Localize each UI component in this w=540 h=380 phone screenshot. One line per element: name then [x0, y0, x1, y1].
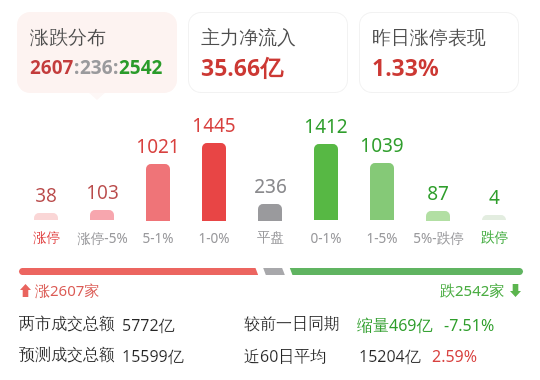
staticText: 1.33% [372, 51, 439, 82]
staticText: 236 [80, 54, 113, 80]
staticText: 2542 [119, 54, 163, 80]
other: 下跌 [510, 284, 521, 297]
staticText: 1445 [192, 112, 236, 137]
button[interactable]: 跌2542家 [430, 280, 521, 300]
staticText: 缩量469亿 [357, 314, 433, 336]
staticText: 1021 [136, 133, 180, 158]
staticText: 2.59% [432, 345, 478, 367]
staticText: 5%-跌停 [413, 229, 464, 247]
staticText: 1412 [304, 113, 348, 138]
staticText: 两市成交总额 [19, 314, 115, 334]
button[interactable]: 昨日涨停表现 [359, 12, 519, 93]
staticText: 5772亿 [122, 314, 175, 336]
staticText: 跌停 [481, 229, 508, 246]
staticText: 涨停 [33, 229, 60, 246]
staticText: 103 [86, 179, 119, 204]
staticText: 预测成交总额 [19, 345, 115, 365]
staticText: 0-1% [310, 229, 342, 247]
staticText: : [113, 54, 119, 80]
staticText: 2607 [30, 54, 74, 80]
button[interactable]: 上涨 [20, 280, 100, 300]
staticText: 平盘 [257, 229, 284, 246]
staticText: : [74, 54, 80, 80]
staticText: 跌2542家 [440, 280, 505, 300]
staticText: 近60日平均 [244, 345, 327, 367]
button[interactable]: 主力净流入 [188, 12, 348, 93]
staticText: 涨跌分布 [30, 26, 106, 50]
staticText: 15599亿 [122, 345, 184, 367]
staticText: 昨日涨停表现 [372, 26, 486, 50]
button[interactable]: 涨跌分布 [17, 12, 177, 93]
staticText: 87 [427, 180, 449, 205]
staticText: 15204亿 [359, 345, 421, 367]
other: 上涨 [20, 284, 31, 297]
staticText: 1-5% [366, 229, 398, 247]
staticText: 5-1% [142, 229, 174, 247]
staticText: -7.51% [444, 314, 495, 336]
staticText: 涨2607家 [35, 280, 100, 300]
staticText: 35.66亿 [201, 51, 284, 82]
staticText: 较前一日同期 [244, 314, 340, 334]
staticText: 236 [254, 173, 287, 198]
staticText: 涨停-5% [77, 229, 128, 247]
staticText: 4 [489, 184, 500, 209]
staticText: 主力净流入 [201, 26, 296, 50]
staticText: 1-0% [198, 229, 230, 247]
staticText: 1039 [360, 132, 404, 157]
staticText: 38 [35, 182, 57, 207]
